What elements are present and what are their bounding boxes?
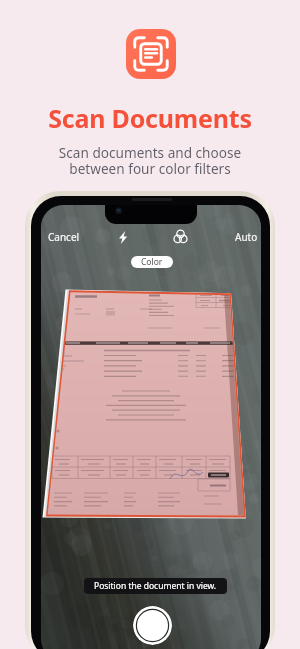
button[interactable]: Flash xyxy=(112,226,134,248)
button[interactable]: Scan Documents app icon xyxy=(126,29,176,79)
button[interactable]: Color filter xyxy=(169,225,191,247)
staticText: Scan documents and choose between four c… xyxy=(0,143,300,178)
button[interactable]: Capture xyxy=(133,606,172,645)
staticText: Auto xyxy=(235,230,258,244)
button[interactable]: Cancel xyxy=(44,228,84,246)
button[interactable]: Color xyxy=(131,256,173,268)
button[interactable]: Auto xyxy=(231,228,261,246)
staticText: Position the document in view. xyxy=(94,580,217,592)
staticText: Color xyxy=(141,256,163,268)
staticText: Scan Documents xyxy=(0,101,300,135)
staticText: Cancel xyxy=(48,230,80,244)
